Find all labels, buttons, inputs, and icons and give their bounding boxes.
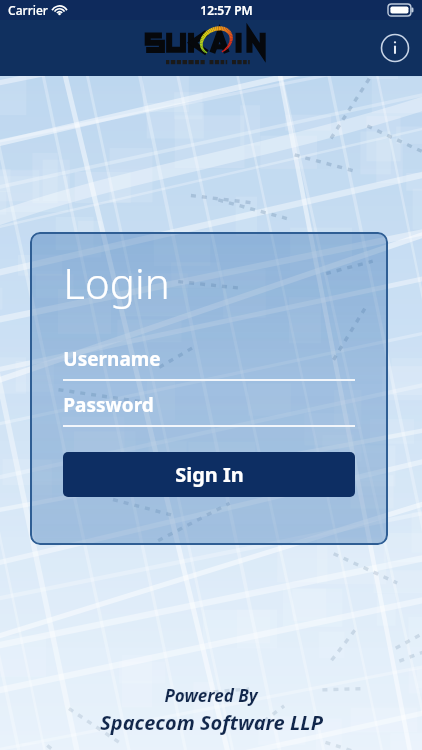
staticText: Spacecom Software LLP	[100, 709, 323, 736]
button[interactable]: Info	[380, 33, 410, 63]
staticText: Powered By	[164, 684, 258, 707]
staticText: Carrier	[8, 2, 48, 18]
button[interactable]: Username	[63, 337, 355, 381]
staticText: Username	[63, 346, 161, 372]
button[interactable]: Sign In	[63, 452, 355, 497]
staticText: 12:57 PM	[200, 2, 253, 18]
staticText: Login	[63, 254, 170, 311]
staticText: Sign In	[175, 461, 244, 488]
staticText: Password	[63, 392, 154, 418]
button[interactable]: Password	[63, 383, 355, 427]
